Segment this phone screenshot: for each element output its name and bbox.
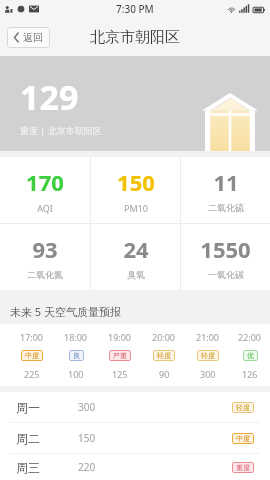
- staticText: 严重: [113, 351, 127, 360]
- staticText: 20:00: [152, 331, 176, 343]
- staticText: 中度: [25, 351, 39, 360]
- button[interactable]: 20:00: [142, 324, 186, 386]
- staticText: 225: [24, 368, 40, 380]
- staticText: 一氧化碳: [208, 269, 244, 280]
- staticText: AQI: [37, 202, 53, 214]
- button[interactable]: 93: [0, 224, 90, 290]
- button[interactable]: 22:00: [230, 324, 270, 386]
- button[interactable]: 21:00: [186, 324, 230, 386]
- staticText: 19:00: [108, 331, 132, 343]
- staticText: 周二: [16, 431, 78, 446]
- button[interactable]: 周一: [0, 392, 270, 422]
- staticText: 二氧化硫: [208, 202, 244, 213]
- staticText: 24: [123, 234, 149, 264]
- button[interactable]: 11: [181, 157, 270, 223]
- staticText: 周一: [16, 400, 78, 415]
- staticText: 返回: [23, 31, 43, 44]
- staticText: 轻度: [236, 403, 250, 412]
- button[interactable]: 170: [0, 157, 90, 223]
- staticText: 周三: [16, 460, 78, 475]
- staticText: 93: [32, 234, 58, 264]
- button[interactable]: 返回: [7, 27, 50, 48]
- staticText: 126: [242, 368, 258, 380]
- staticText: 150: [117, 167, 155, 197]
- staticText: 300: [78, 400, 232, 414]
- button[interactable]: 24: [91, 224, 180, 290]
- button[interactable]: 18:00: [54, 324, 98, 386]
- staticText: 125: [112, 368, 128, 380]
- button[interactable]: 周三: [0, 454, 270, 480]
- staticText: 18:00: [64, 331, 88, 343]
- staticText: 7:30 PM: [116, 2, 154, 16]
- staticText: 100: [68, 368, 84, 380]
- staticText: 中度: [236, 434, 250, 443]
- staticText: 二氧化氮: [27, 269, 63, 280]
- staticText: 170: [26, 167, 64, 197]
- staticText: PM10: [124, 202, 148, 214]
- button[interactable]: 17:00: [10, 324, 54, 386]
- button[interactable]: 150: [91, 157, 180, 223]
- staticText: 北京市朝阳区: [90, 28, 180, 47]
- button[interactable]: 周二: [0, 423, 270, 453]
- staticText: 轻度: [201, 351, 215, 360]
- staticText: 90: [159, 368, 170, 380]
- staticText: 未来 5 天空气质量预报: [10, 304, 122, 319]
- staticText: 22:00: [238, 331, 262, 343]
- staticText: 17:00: [20, 331, 44, 343]
- staticText: 220: [78, 460, 232, 474]
- staticText: 良: [73, 351, 80, 360]
- staticText: 129: [20, 74, 79, 120]
- staticText: 1550: [200, 234, 251, 264]
- staticText: 轻度: [157, 351, 171, 360]
- staticText: 11: [213, 167, 239, 197]
- staticText: 优: [247, 351, 254, 360]
- button[interactable]: 1550: [181, 224, 270, 290]
- staticText: 150: [78, 431, 232, 445]
- staticText: 21:00: [196, 331, 220, 343]
- button[interactable]: 19:00: [98, 324, 142, 386]
- staticText: 臭氧: [127, 269, 145, 280]
- staticText: 300: [200, 368, 216, 380]
- staticText: 重度 | 北京市朝阳区: [20, 124, 102, 136]
- staticText: 重度: [236, 463, 250, 472]
